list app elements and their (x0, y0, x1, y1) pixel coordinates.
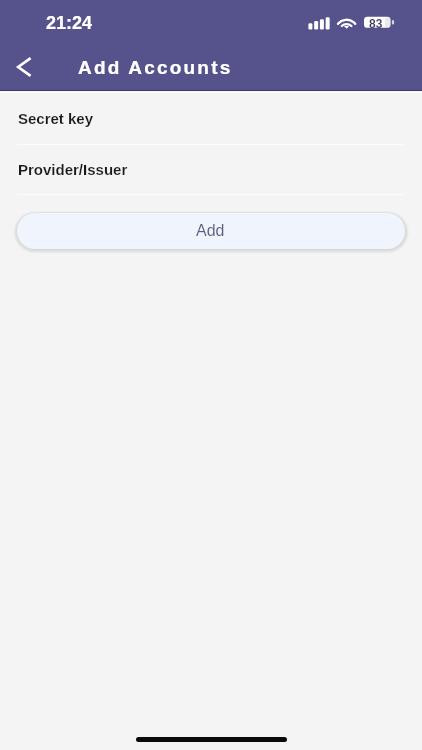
button[interactable]: Provider/Issuer (0, 150, 422, 195)
staticText: 21:24 (46, 13, 93, 33)
staticText: Provider/Issuer (18, 161, 128, 178)
button[interactable]: Back (5, 49, 41, 85)
staticText: Add (196, 222, 225, 240)
staticText: Secret key (18, 110, 94, 127)
staticText: Add Accounts (78, 57, 233, 78)
button[interactable]: Secret key (0, 100, 422, 145)
staticText: 83 (369, 17, 383, 28)
button[interactable]: Add (17, 213, 405, 249)
